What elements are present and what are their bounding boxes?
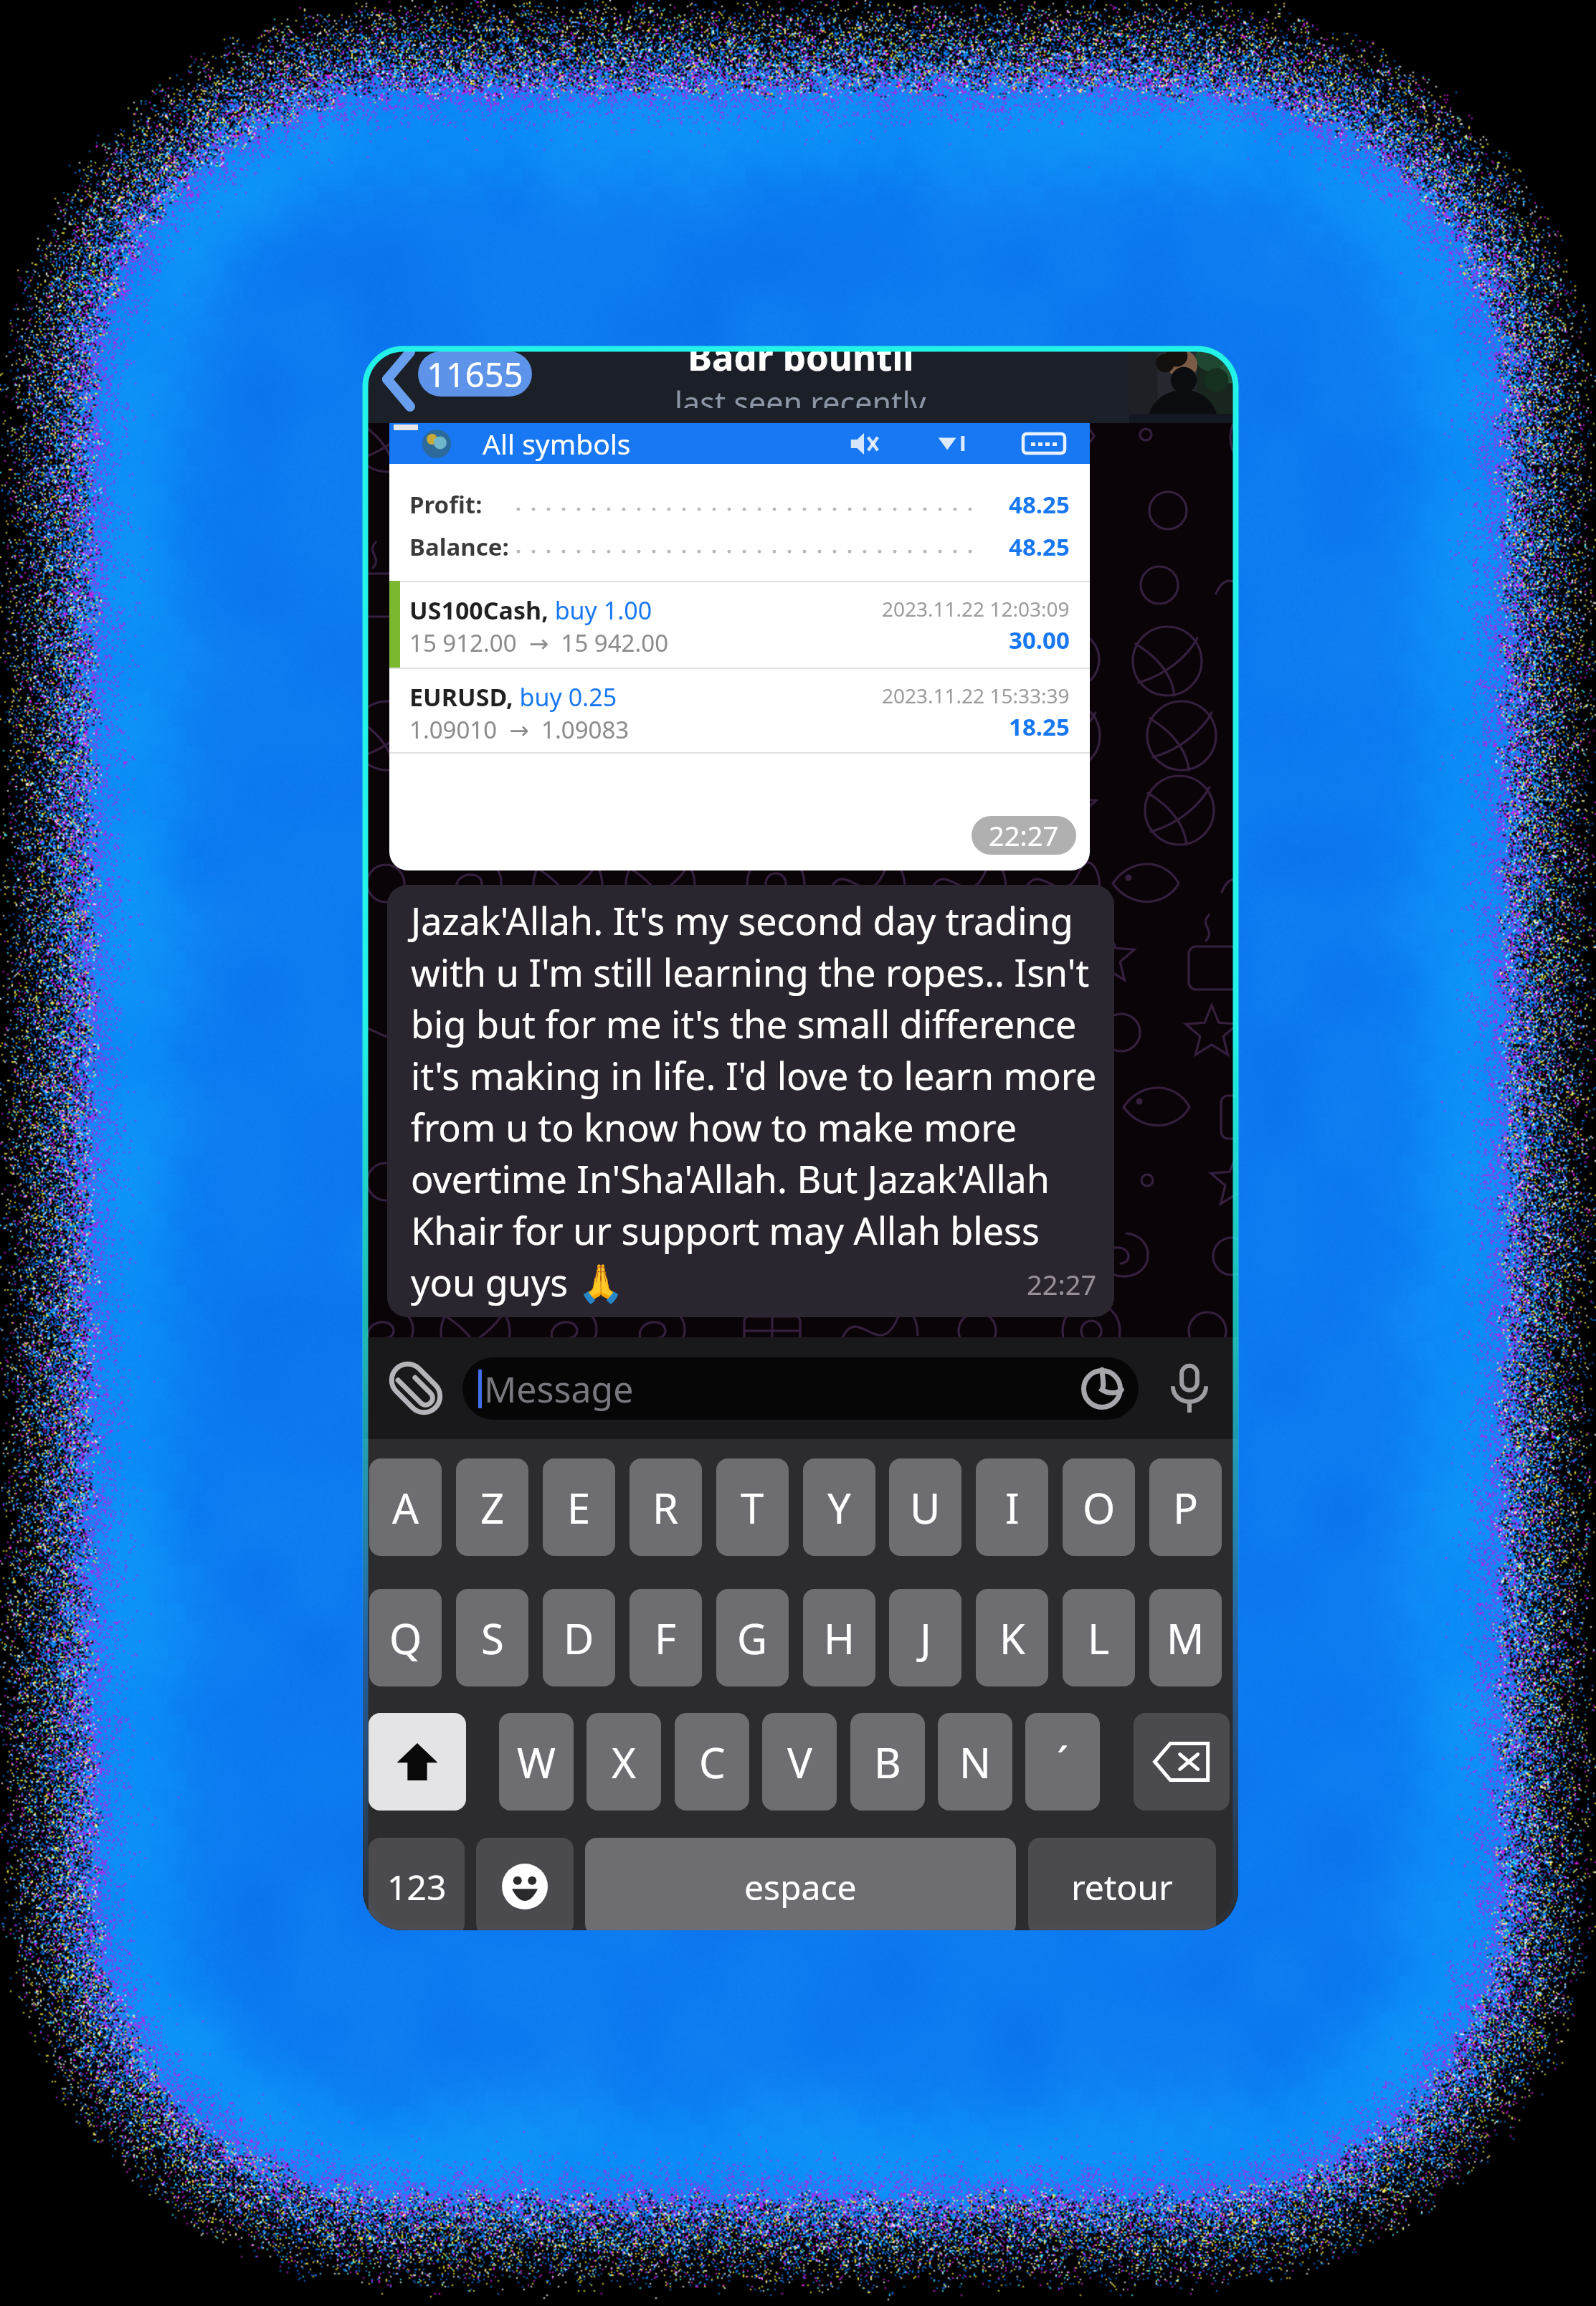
staticText: G [737,1610,768,1666]
staticText: US100Cash, buy 1.00 [409,594,652,627]
button[interactable]: J [889,1589,961,1686]
button[interactable]: U [889,1458,961,1556]
staticText: D [564,1610,594,1666]
staticText: Balance: [409,531,509,563]
staticText: W [517,1734,556,1790]
button[interactable]: Message [462,1357,1139,1420]
staticText: J [920,1610,931,1666]
button[interactable]: I [976,1458,1048,1556]
staticText: B [874,1734,901,1790]
staticText: 1.09010 → 1.09083 [409,713,630,746]
button[interactable]: B [850,1713,925,1811]
button[interactable]: Stickers [1081,1368,1123,1410]
staticText: C [699,1734,726,1790]
button[interactable]: retour [1028,1838,1216,1930]
button[interactable]: Record voice message [1156,1355,1222,1421]
staticText: All symbols [483,424,631,462]
staticText: F [655,1610,677,1666]
staticText: Message [484,1365,634,1413]
button[interactable]: Jazak'Allah. It's my second day trading … [387,885,1114,1317]
staticText: 2023.11.22 15:33:39 [882,682,1070,709]
button[interactable]: H [803,1589,875,1686]
button[interactable]: Profile photo [1129,346,1238,423]
button[interactable]: Q [369,1589,442,1686]
button[interactable]: T [716,1458,789,1556]
button[interactable]: D [543,1589,615,1686]
staticText: L [1088,1610,1110,1666]
staticText: I [1005,1479,1020,1536]
staticText: ´ [1057,1734,1069,1790]
staticText: U [910,1479,941,1536]
button[interactable]: Screenshot of trading account [389,423,1090,870]
staticText: Jazak'Allah. It's my second day trading … [411,895,1097,1308]
button[interactable]: Z [456,1458,528,1556]
button[interactable]: A [369,1458,442,1556]
staticText: P [1173,1479,1199,1536]
staticText: S [481,1610,504,1666]
button[interactable]: S [456,1589,528,1686]
staticText: 15 912.00 → 15 942.00 [409,627,669,659]
staticText: Badr bountil [688,346,914,381]
button[interactable]: Emoji [476,1838,574,1930]
staticText: Q [389,1610,422,1666]
staticText: E [567,1479,591,1536]
button[interactable]: G [716,1589,789,1686]
button[interactable]: espace [585,1838,1016,1930]
button[interactable]: E [543,1458,615,1556]
staticText: espace [744,1864,857,1910]
staticText: last seen recently [675,381,926,408]
staticText: 18.25 [1009,711,1070,743]
staticText: T [741,1479,764,1536]
button[interactable]: W [499,1713,574,1811]
staticText: 48.25 [1009,488,1070,521]
button[interactable]: O [1063,1458,1135,1556]
staticText: retour [1071,1864,1173,1910]
staticText: X [612,1734,636,1790]
staticText: Y [827,1479,851,1536]
button[interactable]: R [630,1458,702,1556]
staticText: O [1083,1479,1116,1536]
button[interactable]: Shift [369,1713,466,1811]
staticText: K [999,1610,1025,1666]
staticText: V [787,1734,812,1790]
staticText: A [392,1479,419,1536]
staticText: N [959,1734,992,1790]
staticText: 22:27 [1027,1266,1097,1303]
button[interactable]: C [675,1713,749,1811]
button[interactable]: Backspace [1134,1713,1230,1811]
staticText: M [1167,1610,1205,1666]
staticText: 11655 [427,351,523,397]
button[interactable]: V [762,1713,837,1811]
staticText: Profit: [409,488,483,521]
button[interactable]: F [630,1589,702,1686]
button[interactable]: M [1149,1589,1222,1686]
button[interactable]: P [1149,1458,1222,1556]
button[interactable]: 123 [369,1838,465,1930]
button[interactable]: Back [363,346,414,423]
button[interactable]: Attach [383,1355,449,1421]
button[interactable]: N [938,1713,1012,1811]
button[interactable]: X [586,1713,661,1811]
staticText: 22:27 [989,817,1059,854]
button[interactable]: L [1063,1589,1135,1686]
staticText: Z [480,1479,505,1536]
button[interactable]: K [976,1589,1048,1686]
staticText: R [652,1479,679,1536]
staticText: EURUSD, buy 0.25 [409,680,617,713]
staticText: 2023.11.22 12:03:09 [882,595,1070,622]
staticText: 48.25 [1009,531,1070,563]
staticText: 30.00 [1009,624,1070,656]
button[interactable]: ´ [1025,1713,1100,1811]
staticText: 123 [387,1864,447,1910]
button[interactable]: Y [803,1458,875,1556]
button[interactable]: 11655 [418,351,532,397]
staticText: H [824,1610,855,1666]
